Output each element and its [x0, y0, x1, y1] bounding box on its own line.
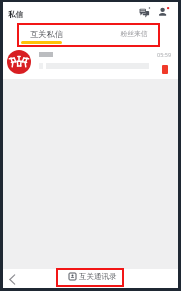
staticText: 私信: [8, 10, 23, 19]
staticText: 05:59: [157, 51, 172, 58]
staticText: 互关私信: [30, 29, 63, 39]
button[interactable]: 粉丝来信: [90, 21, 178, 47]
button[interactable]: 05:59: [3, 47, 178, 79]
staticText: 互关通讯录: [79, 272, 117, 281]
button[interactable]: Back: [3, 270, 21, 288]
button[interactable]: 互关私信: [3, 21, 90, 47]
button[interactable]: Contacts: [156, 5, 170, 19]
button[interactable]: 互关通讯录: [64, 270, 122, 283]
staticText: 粉丝来信: [120, 29, 148, 38]
button[interactable]: New message: [137, 5, 151, 19]
